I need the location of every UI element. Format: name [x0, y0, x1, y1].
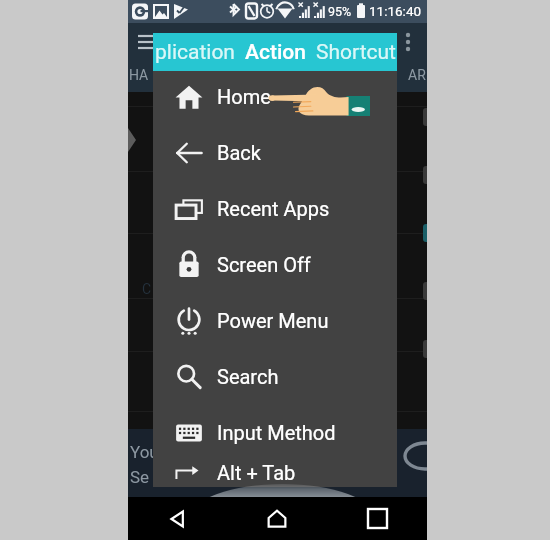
staticText: Home: [217, 85, 271, 108]
button[interactable]: AR: [408, 67, 426, 83]
staticText: You: [130, 442, 159, 462]
staticText: Screen Off: [217, 253, 311, 276]
button[interactable]: plication: [155, 40, 235, 65]
button[interactable]: Home: [227, 497, 327, 540]
button[interactable]: Back: [153, 125, 397, 181]
button[interactable]: Search: [153, 349, 397, 405]
button[interactable]: Recent Apps: [153, 181, 397, 237]
button[interactable]: Back: [128, 497, 227, 540]
staticText: Input Method: [217, 421, 336, 444]
button[interactable]: More options: [389, 23, 427, 61]
staticText: 95%: [328, 4, 352, 19]
button[interactable]: Input Method: [153, 405, 397, 461]
button[interactable]: Recents: [327, 497, 427, 540]
staticText: 11:16:40: [369, 3, 422, 19]
staticText: Se: [130, 467, 150, 487]
button[interactable]: Home: [153, 69, 397, 125]
button[interactable]: Action: [245, 40, 306, 65]
staticText: Recent Apps: [217, 197, 330, 220]
staticText: Back: [217, 141, 261, 164]
button[interactable]: Open navigation drawer: [128, 23, 166, 61]
staticText: C: [142, 281, 152, 297]
staticText: Alt + Tab: [217, 461, 296, 484]
staticText: Power Menu: [217, 309, 329, 332]
button[interactable]: Alt + Tab: [153, 461, 397, 485]
button[interactable]: Power Menu: [153, 293, 397, 349]
button[interactable]: Screen Off: [153, 237, 397, 293]
button[interactable]: HA: [129, 67, 149, 83]
button[interactable]: Shortcut: [316, 40, 396, 65]
staticText: Search: [217, 365, 279, 388]
